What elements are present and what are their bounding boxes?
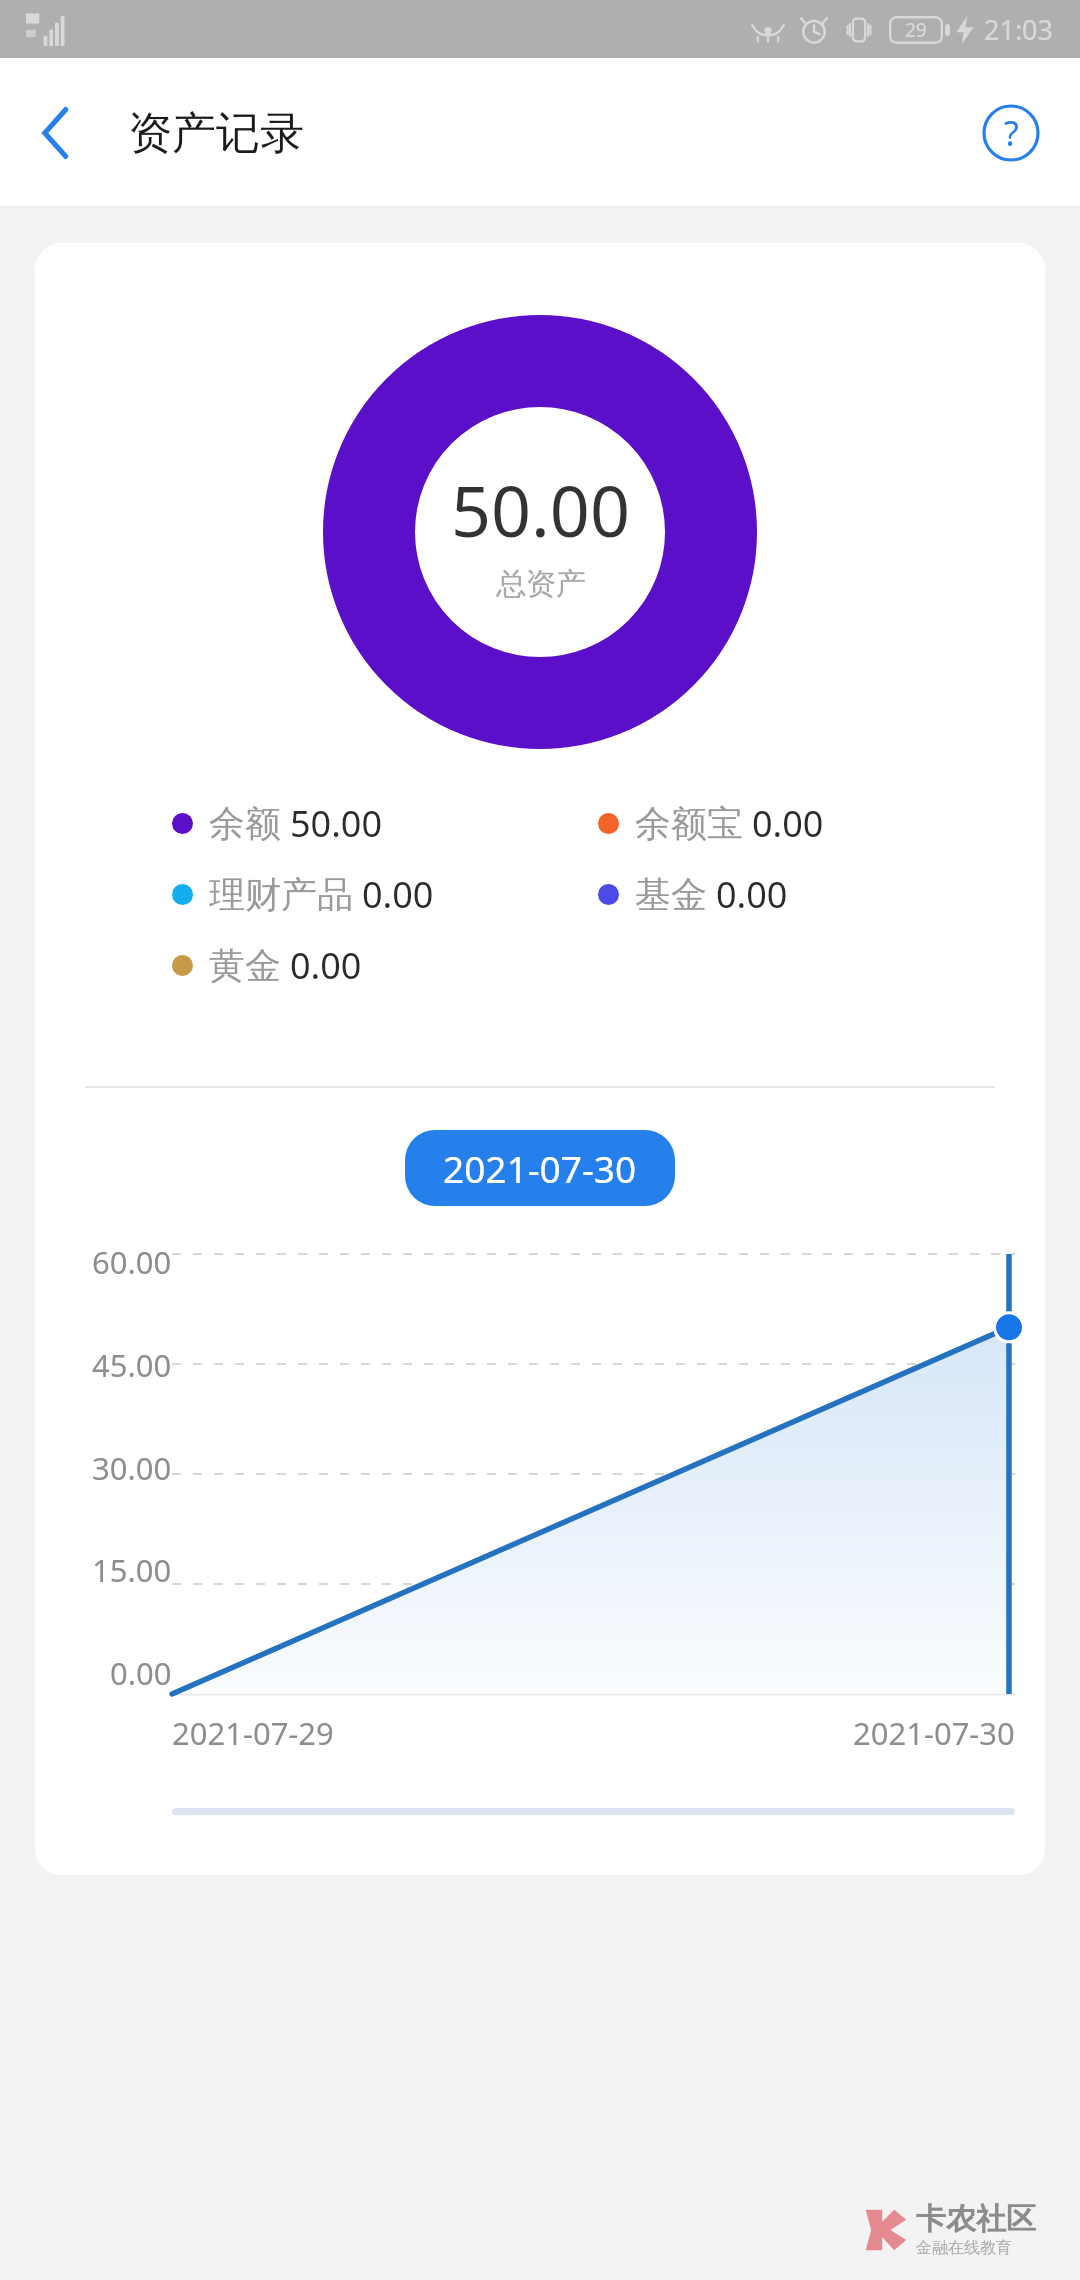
button[interactable]: 余额 [172, 799, 383, 848]
button[interactable]: 理财产品 [172, 870, 434, 919]
staticText: 余额 [209, 801, 281, 846]
staticText: 总资产 [496, 565, 586, 603]
button[interactable]: Help [982, 104, 1080, 162]
staticText: 2021-07-30 [443, 1143, 637, 1193]
staticText: 60.00 [92, 1241, 172, 1283]
staticText: 0.00 [716, 870, 788, 919]
staticText: 资产记录 [128, 106, 304, 161]
staticText: 0.00 [290, 941, 362, 990]
staticText: 30.00 [92, 1447, 172, 1489]
staticText: 45.00 [92, 1344, 172, 1386]
staticText: 15.00 [92, 1549, 172, 1591]
staticText: 2021-07-30 [853, 1712, 1015, 1754]
staticText: 2021-07-29 [172, 1712, 334, 1754]
staticText: 29 [905, 17, 927, 43]
button[interactable]: 黄金 [172, 941, 362, 990]
staticText: 理财产品 [209, 872, 353, 917]
staticText: 卡农社区 [916, 2200, 1036, 2238]
button[interactable]: Back [0, 88, 88, 178]
staticText: 金融在线教育 [916, 2238, 1012, 2258]
staticText: 50.00 [290, 799, 383, 848]
staticText: 0.00 [362, 870, 434, 919]
staticText: 50.00 [451, 462, 630, 557]
staticText: ? [1004, 110, 1019, 156]
staticText: 21:03 [984, 11, 1054, 48]
staticText: 0.00 [110, 1652, 172, 1694]
button[interactable]: 基金 [598, 870, 788, 919]
button[interactable]: 2021-07-30 [405, 1130, 675, 1206]
staticText: 基金 [635, 872, 707, 917]
staticText: 0.00 [752, 799, 824, 848]
staticText: 余额宝 [635, 801, 743, 846]
button[interactable]: 余额宝 [598, 799, 824, 848]
staticText: 黄金 [209, 943, 281, 988]
